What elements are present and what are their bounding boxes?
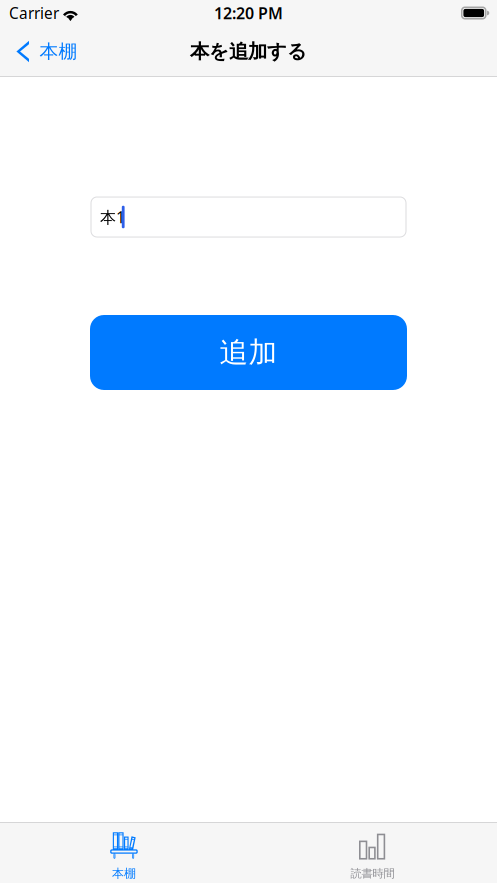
staticText: 本棚: [39, 40, 77, 63]
button[interactable]: 本棚: [0, 822, 248, 883]
staticText: 本1: [100, 206, 125, 228]
button[interactable]: 追加: [90, 315, 407, 390]
button[interactable]: 本棚: [0, 33, 87, 70]
staticText: 追加: [219, 334, 277, 370]
staticText: 読書時間: [350, 866, 394, 881]
staticText: Carrier: [9, 3, 59, 23]
staticText: 12:20 PM: [214, 2, 283, 24]
staticText: 本を追加する: [190, 39, 307, 64]
button[interactable]: 本1: [91, 197, 406, 237]
button[interactable]: 読書時間: [248, 822, 497, 883]
staticText: 本棚: [112, 866, 136, 881]
